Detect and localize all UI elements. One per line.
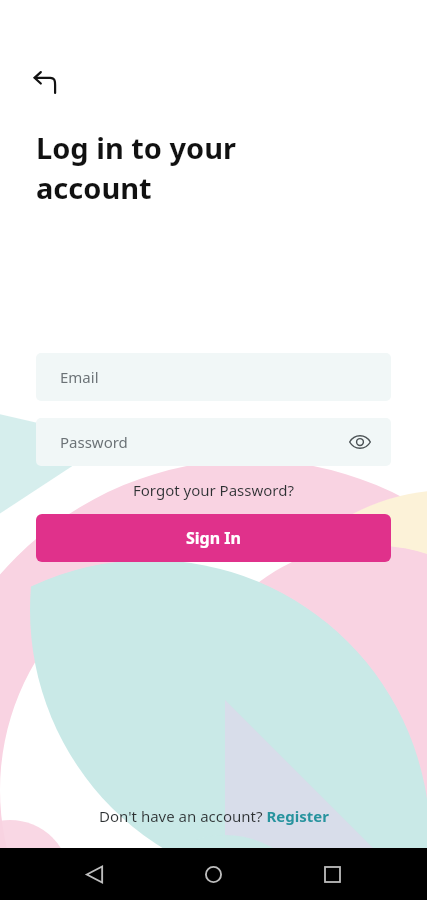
button[interactable]: Forgot your Password? bbox=[125, 476, 302, 504]
staticText: Sign In bbox=[186, 527, 241, 549]
button[interactable]: Sign In bbox=[36, 514, 391, 562]
button[interactable]: Recent apps bbox=[308, 850, 356, 898]
button[interactable]: Email bbox=[36, 353, 391, 401]
button[interactable]: Show password bbox=[343, 425, 377, 459]
staticText: Log in to your account bbox=[36, 128, 237, 208]
staticText: Forgot your Password? bbox=[133, 480, 294, 500]
button[interactable]: Back bbox=[70, 850, 118, 898]
staticText: Password bbox=[60, 432, 128, 452]
button[interactable]: Home bbox=[189, 850, 237, 898]
staticText: Don't have an account? Register bbox=[99, 806, 329, 826]
button[interactable]: Don't have an account? Register bbox=[0, 800, 427, 832]
button[interactable]: Back bbox=[24, 60, 68, 104]
button[interactable]: Password bbox=[36, 418, 391, 466]
staticText: Email bbox=[60, 367, 99, 387]
